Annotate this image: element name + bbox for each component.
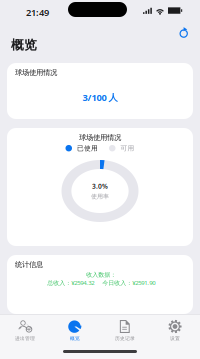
staticText: 进出管理 (15, 335, 35, 341)
staticText: 使用率 (91, 193, 109, 200)
button[interactable]: 历史记录 (100, 314, 150, 345)
staticText: 收入数据： 总收入：¥2594.32 今日收入：¥2591.90 (47, 271, 155, 287)
staticText: 设置 (170, 335, 180, 341)
staticText: 概览 (70, 335, 80, 341)
staticText: 球场使用情况 (79, 133, 121, 142)
button[interactable]: 设置 (150, 314, 200, 345)
staticText: 历史记录 (115, 335, 135, 341)
staticText: 概览 (11, 37, 37, 53)
button[interactable]: 进出管理 (0, 314, 50, 345)
staticText: 可用 (120, 144, 134, 152)
staticText: 3/100 人 (82, 91, 117, 104)
staticText: 3.0% (92, 182, 108, 191)
button[interactable]: 概览 (50, 314, 100, 345)
staticText: 统计信息 (15, 260, 43, 269)
button[interactable]: Refresh (176, 25, 191, 42)
staticText: 已使用 (77, 144, 98, 152)
staticText: 球场使用情况 (15, 68, 57, 77)
staticText: 21:49 (26, 6, 49, 19)
